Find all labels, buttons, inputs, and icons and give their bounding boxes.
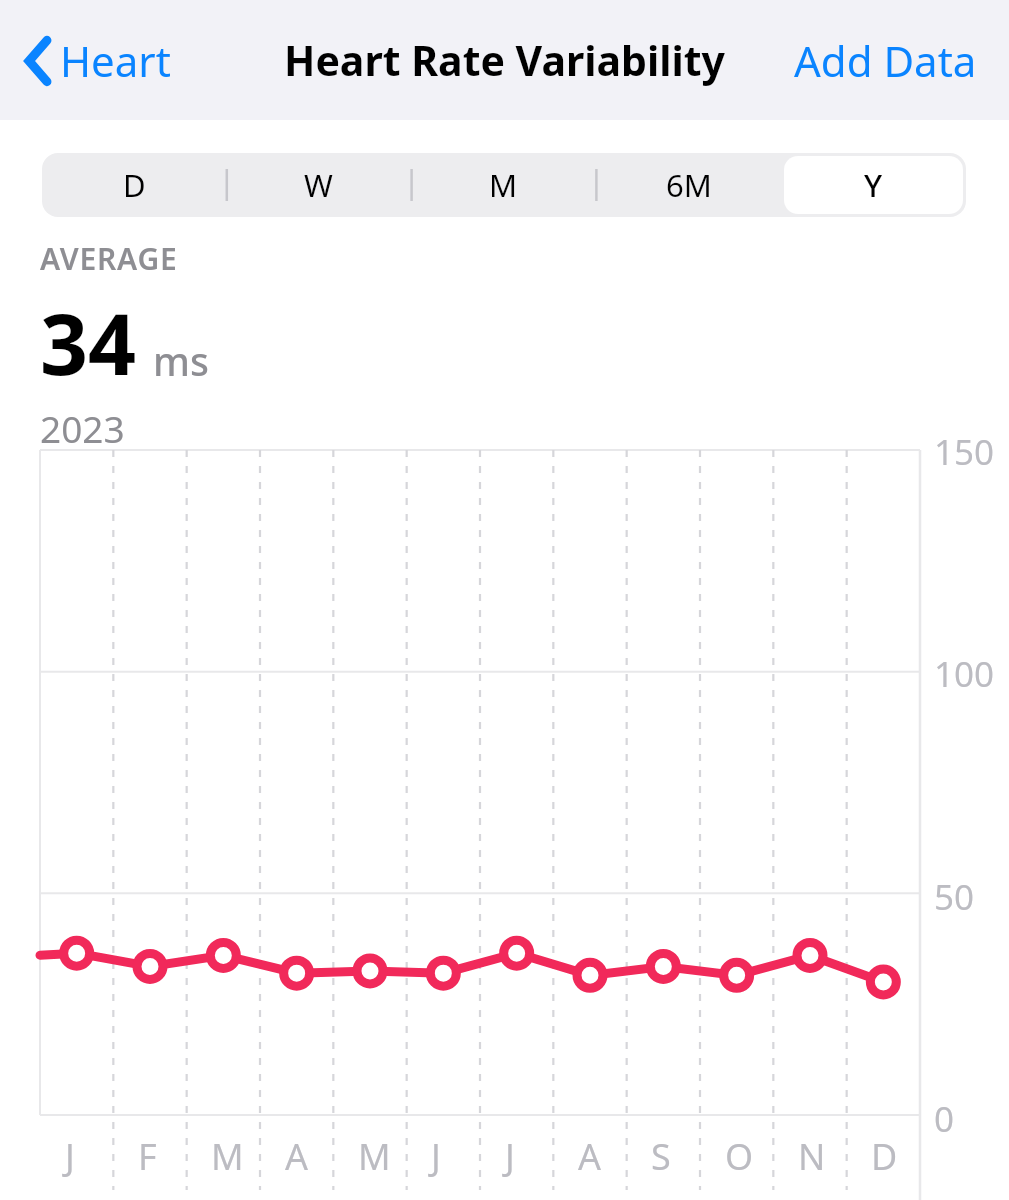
staticText: 150	[934, 428, 995, 476]
staticText: AVERAGE	[40, 238, 178, 279]
staticText: A	[578, 1132, 602, 1181]
button[interactable]: W	[229, 156, 408, 214]
staticText: F	[138, 1132, 157, 1181]
staticText: N	[798, 1132, 826, 1181]
staticText: J	[505, 1132, 515, 1181]
button[interactable]: D	[45, 156, 223, 214]
staticText: ms	[153, 334, 209, 387]
button[interactable]: M	[414, 156, 593, 214]
staticText: S	[651, 1132, 671, 1181]
staticText: 2023	[40, 403, 125, 453]
staticText: Heart	[60, 32, 171, 89]
staticText: Add Data	[794, 32, 977, 89]
staticText: 50	[934, 873, 975, 921]
staticText: Heart Rate Variability	[284, 32, 725, 88]
button[interactable]: Add Data	[786, 22, 985, 99]
staticText: J	[65, 1132, 75, 1181]
staticText: D	[123, 164, 146, 206]
staticText: O	[725, 1132, 754, 1181]
button[interactable]: 6M	[599, 156, 778, 214]
staticText: 0	[934, 1095, 955, 1143]
staticText: 34	[40, 285, 137, 399]
staticText: M	[489, 164, 518, 206]
staticText: 100	[934, 650, 995, 698]
staticText: M	[358, 1132, 391, 1181]
staticText: A	[285, 1132, 309, 1181]
staticText: J	[431, 1132, 441, 1181]
staticText: 6M	[666, 164, 712, 206]
button[interactable]: Heart	[16, 22, 179, 99]
button[interactable]: Y	[784, 156, 963, 214]
staticText: W	[304, 164, 333, 206]
staticText: Y	[864, 164, 883, 206]
staticText: D	[871, 1132, 898, 1181]
staticText: M	[211, 1132, 244, 1181]
